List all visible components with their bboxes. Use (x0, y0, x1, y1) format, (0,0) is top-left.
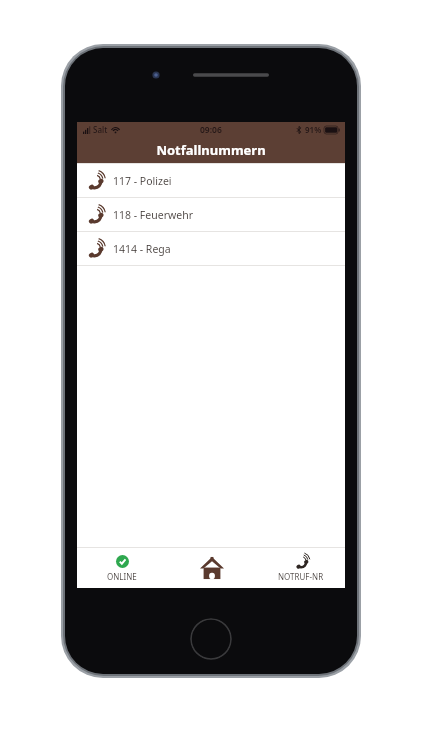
button[interactable]: ONLINE (77, 548, 167, 588)
staticText: 09:06 (200, 124, 222, 136)
button[interactable]: 118 - Feuerwehr (77, 198, 345, 231)
button[interactable]: 117 - Polizei (77, 164, 345, 197)
staticText: 118 - Feuerwehr (113, 208, 193, 222)
staticText: 1414 - Rega (113, 242, 171, 256)
staticText: 117 - Polizei (113, 174, 172, 188)
button[interactable]: NOTRUF-NR (256, 548, 345, 588)
staticText: Notfallnummern (156, 141, 266, 159)
staticText: ONLINE (107, 571, 137, 582)
button[interactable]: Home button (190, 618, 232, 660)
button[interactable]: 1414 - Rega (77, 232, 345, 265)
staticText: NOTRUF-NR (278, 571, 324, 582)
staticText: 91% (305, 124, 322, 135)
staticText: Salt (93, 124, 108, 135)
button[interactable]: Home (167, 548, 256, 588)
